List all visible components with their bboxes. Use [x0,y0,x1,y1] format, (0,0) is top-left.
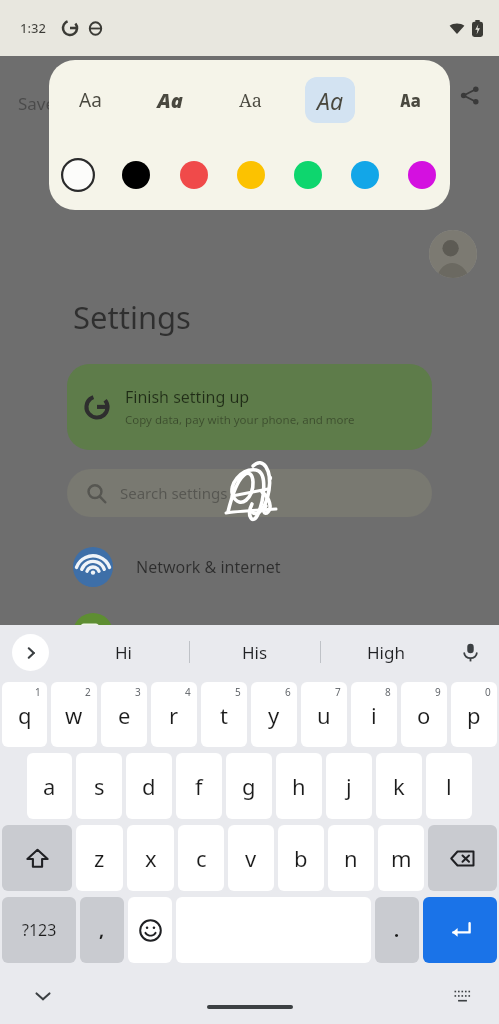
button[interactable]: i [351,682,397,747]
button[interactable]: u [301,682,347,747]
button[interactable]: Enter [423,897,497,963]
button[interactable]: o [401,682,447,747]
button[interactable]: k [376,753,422,819]
button[interactable]: Expand [12,634,49,671]
button[interactable]: q [2,682,47,747]
staticText: 8 [385,685,391,699]
button[interactable]: Colour [233,157,269,193]
button[interactable]: Search settings [67,469,432,517]
button[interactable]: c [178,825,224,891]
button[interactable]: l [426,753,472,819]
staticText: 1 [35,685,41,699]
staticText: 3 [135,685,141,699]
button[interactable]: His [190,625,320,679]
staticText: r [169,700,179,730]
button[interactable]: Share [452,78,486,112]
button[interactable]: Colour [118,157,154,193]
staticText: i [371,700,377,730]
staticText: Save [18,92,56,115]
staticText: v [245,843,257,873]
staticText: x [145,843,157,873]
button[interactable]: Aa [225,77,275,123]
button[interactable]: Emoji [128,897,172,963]
staticText: m [391,843,412,873]
button[interactable]: f [176,753,222,819]
staticText: a [43,771,56,801]
staticText: e [118,700,131,730]
button[interactable]: z [76,825,123,891]
staticText: ?123 [22,919,57,941]
button[interactable]: r [151,682,197,747]
button[interactable]: Hide keyboard [26,979,60,1013]
button[interactable]: Shift [2,825,72,891]
button[interactable]: Connected devices [0,607,499,659]
button[interactable]: Hi [58,625,189,679]
staticText: Finish setting up [125,386,250,408]
button[interactable]: Aa [305,77,355,123]
staticText: s [94,771,105,801]
button[interactable]: j [326,753,372,819]
staticText: o [417,700,431,730]
staticText: y [268,700,280,730]
staticText: 9 [435,685,441,699]
button[interactable]: High [321,625,451,679]
staticText: j [346,771,352,801]
button[interactable]: w [51,682,97,747]
staticText: 5 [235,685,241,699]
button[interactable]: p [451,682,497,747]
button[interactable]: Voice input [452,634,488,670]
button[interactable]: Colour [347,157,383,193]
button[interactable]: Backspace [428,825,497,891]
staticText: u [317,700,331,730]
staticText: Aa [79,87,102,113]
staticText: w [65,700,83,730]
button[interactable]: ?123 [2,897,76,963]
staticText: n [344,843,358,873]
button[interactable]: v [228,825,274,891]
button[interactable]: Account [429,230,477,278]
button[interactable]: a [27,753,72,819]
staticText: f [195,771,203,801]
staticText: 7 [335,685,341,699]
staticText: c [196,843,207,873]
staticText: z [94,843,105,873]
button[interactable]: Aa [65,77,115,123]
button[interactable]: n [328,825,374,891]
button[interactable]: e [101,682,147,747]
button[interactable]: , [80,897,124,963]
staticText: Aa [157,87,183,114]
button[interactable]: y [251,682,297,747]
staticText: Copy data, pay with your phone, and more [125,412,355,428]
button[interactable]: d [126,753,172,819]
button[interactable]: Finish setting up [67,364,432,450]
staticText: 0 [485,685,491,699]
button[interactable]: Aa [145,77,195,123]
button[interactable]: Colour [404,157,440,193]
button[interactable]: b [278,825,324,891]
button[interactable]: s [76,753,122,819]
staticText: High [367,641,405,664]
staticText: . [394,918,400,943]
staticText: p [467,700,481,730]
button[interactable]: g [226,753,272,819]
staticText: 6 [285,685,291,699]
button[interactable]: Colour [176,157,212,193]
staticText: , [99,918,105,943]
button[interactable]: Aa [385,77,435,123]
button[interactable]: t [201,682,247,747]
staticText: h [292,771,306,801]
button[interactable]: Colour [290,157,326,193]
button[interactable]: Switch keyboard [447,981,477,1011]
button[interactable]: Colour [60,157,96,193]
button[interactable]: m [378,825,424,891]
staticText: l [446,771,452,801]
button[interactable]: h [276,753,322,819]
button[interactable]: Network & internet [0,541,499,593]
staticText: Aa [400,89,421,112]
staticText: q [18,700,32,730]
button[interactable]: x [127,825,174,891]
staticText: g [242,771,256,801]
button[interactable]: . [375,897,419,963]
staticText: Aa [239,88,262,113]
